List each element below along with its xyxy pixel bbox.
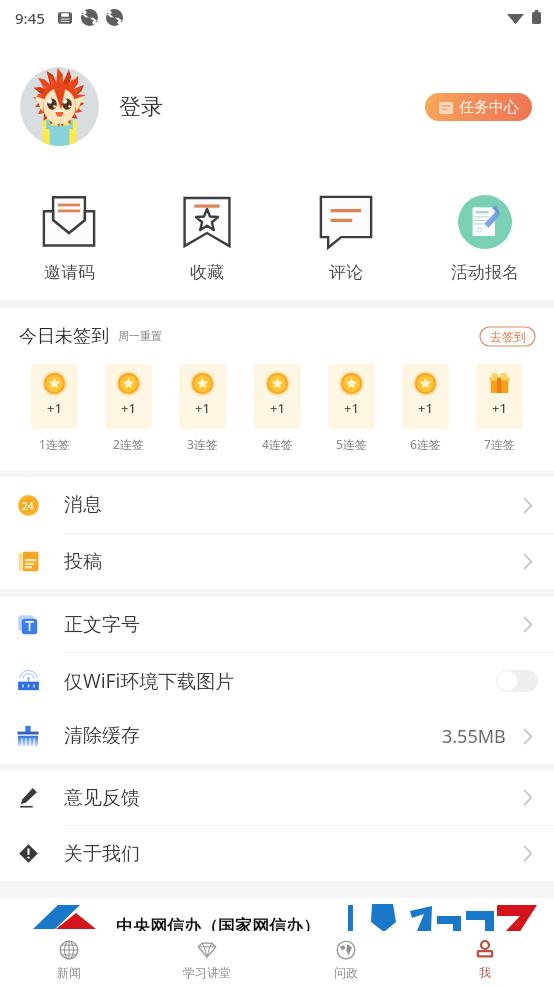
- button[interactable]: 24: [0, 477, 554, 533]
- button[interactable]: +1: [328, 364, 375, 452]
- button[interactable]: 去签到: [480, 327, 535, 346]
- staticText: 2连签: [113, 436, 144, 452]
- button[interactable]: 问政: [276, 931, 415, 986]
- staticText: 3连签: [187, 436, 218, 452]
- staticText: 清除缓存: [64, 724, 140, 748]
- staticText: 意见反馈: [64, 786, 140, 810]
- button[interactable]: 投稿: [0, 534, 554, 589]
- staticText: 中央网信办（国家网信办）: [116, 916, 320, 931]
- staticText: 正文字号: [64, 613, 140, 637]
- staticText: 学习讲堂: [183, 965, 231, 980]
- button[interactable]: 登录: [119, 93, 163, 121]
- staticText: 3.55MB: [442, 724, 506, 749]
- button[interactable]: +1: [105, 364, 152, 452]
- staticText: +1: [270, 399, 285, 417]
- button[interactable]: 活动报名: [415, 178, 554, 300]
- staticText: 任务中心: [459, 98, 519, 117]
- staticText: 活动报名: [451, 262, 519, 283]
- staticText: +1: [344, 399, 359, 417]
- button[interactable]: 我: [415, 931, 554, 986]
- staticText: 9:45: [15, 8, 45, 28]
- staticText: 周一重置: [118, 329, 162, 343]
- staticText: +1: [195, 399, 210, 417]
- button[interactable]: 邀请码: [0, 178, 138, 300]
- staticText: 评论: [329, 262, 363, 283]
- staticText: 投稿: [64, 550, 102, 574]
- staticText: 5连签: [336, 436, 367, 452]
- staticText: +1: [47, 399, 62, 417]
- button[interactable]: 新闻: [0, 931, 138, 986]
- button[interactable]: 任务中心: [425, 93, 532, 121]
- button[interactable]: 清除缓存: [0, 708, 554, 764]
- button[interactable]: +1: [31, 364, 78, 452]
- staticText: 今日未签到: [19, 325, 109, 348]
- button[interactable]: 收藏: [138, 178, 276, 300]
- staticText: 24: [22, 499, 34, 513]
- button[interactable]: 学习讲堂: [138, 931, 276, 986]
- staticText: 6连签: [410, 436, 441, 452]
- button[interactable]: 正文字号: [0, 597, 554, 652]
- button[interactable]: 评论: [276, 178, 415, 300]
- staticText: 去签到: [490, 329, 526, 344]
- button[interactable]: +1: [254, 364, 301, 452]
- button[interactable]: 关于我们: [0, 826, 554, 881]
- staticText: 问政: [334, 965, 358, 980]
- staticText: 消息: [64, 493, 102, 517]
- button[interactable]: 意见反馈: [0, 770, 554, 825]
- staticText: 新闻: [57, 965, 81, 980]
- button[interactable]: +1: [179, 364, 226, 452]
- button[interactable]: +1: [476, 364, 523, 452]
- button[interactable]: 仅WiFi环境下载图片: [0, 653, 554, 708]
- staticText: 收藏: [190, 262, 224, 283]
- staticText: 邀请码: [44, 262, 95, 283]
- staticText: +1: [492, 399, 507, 417]
- staticText: 1连签: [39, 436, 70, 452]
- staticText: +1: [121, 399, 136, 417]
- button[interactable]: Avatar: [20, 67, 99, 146]
- staticText: 仅WiFi环境下载图片: [64, 668, 235, 694]
- button[interactable]: 中央网信办（国家网信办）: [0, 898, 554, 931]
- staticText: 7连签: [484, 436, 515, 452]
- staticText: 我: [479, 965, 491, 980]
- button[interactable]: +1: [402, 364, 449, 452]
- staticText: 4连签: [262, 436, 293, 452]
- staticText: 关于我们: [64, 842, 140, 866]
- staticText: +1: [418, 399, 433, 417]
